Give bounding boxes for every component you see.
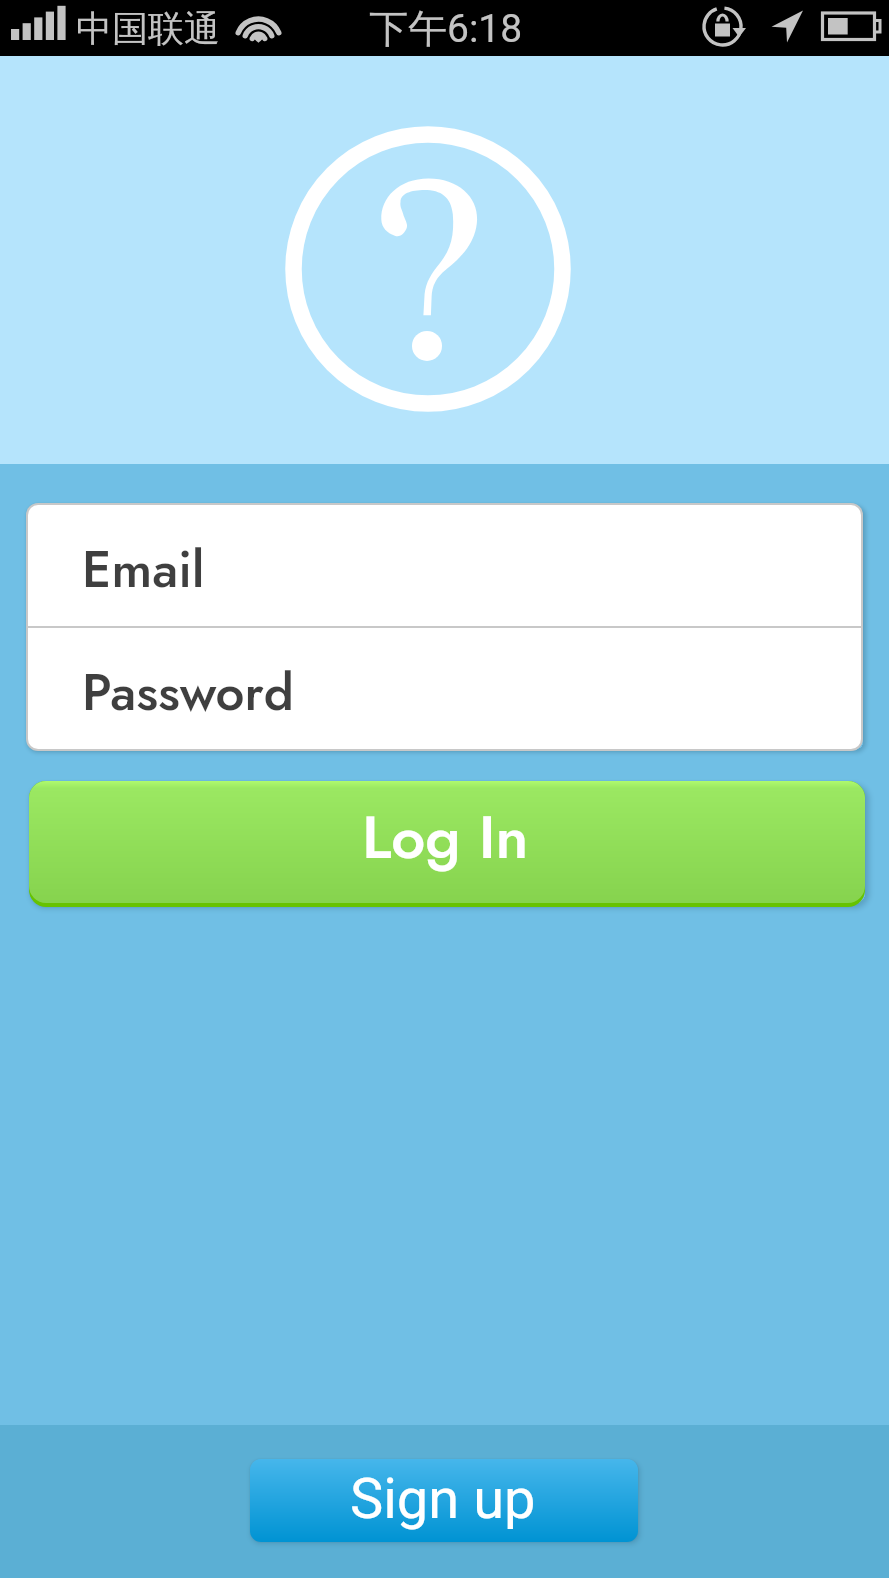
staticText: Log In xyxy=(362,794,529,881)
other: Rotation lock xyxy=(698,2,752,51)
other: App logo xyxy=(268,109,588,429)
staticText: 下午6:18 xyxy=(369,4,523,53)
button[interactable]: Sign up xyxy=(250,1459,638,1542)
staticText: Password xyxy=(82,655,294,729)
button[interactable]: Log In xyxy=(29,781,865,907)
other: Battery level xyxy=(820,10,882,44)
staticText: Sign up xyxy=(350,1466,536,1532)
other: Wi-Fi connected xyxy=(234,8,283,46)
button[interactable]: Password xyxy=(28,628,861,749)
other: Cellular signal strength xyxy=(8,12,70,44)
button[interactable]: Email xyxy=(28,505,861,626)
other: Location services active xyxy=(768,6,808,48)
staticText: Email xyxy=(82,532,205,606)
staticText: 中国联通 xyxy=(76,6,220,51)
